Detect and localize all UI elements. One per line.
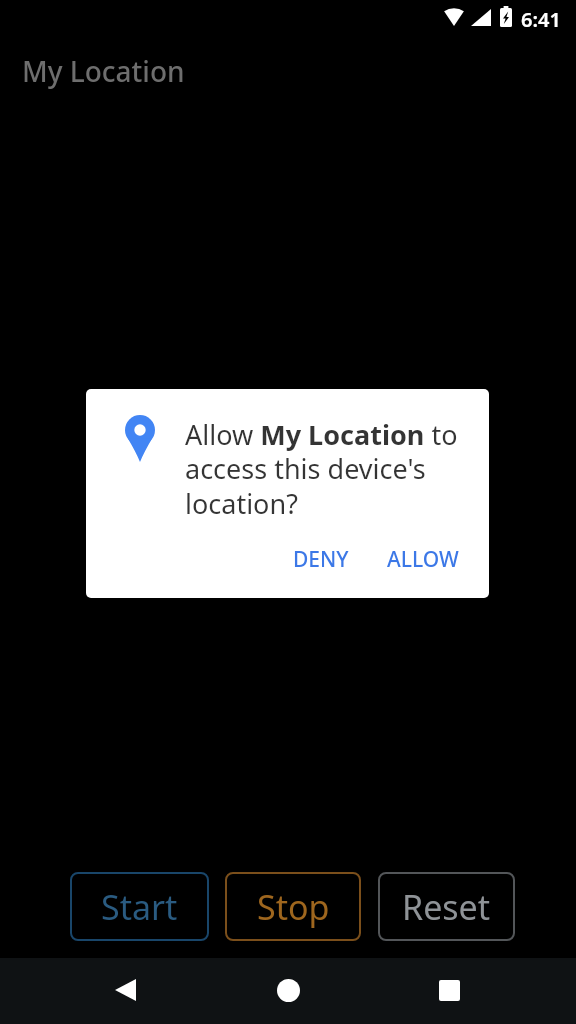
button[interactable]: DENY bbox=[293, 545, 349, 574]
staticText: My Location bbox=[22, 52, 185, 90]
staticText: Start bbox=[101, 884, 178, 930]
button[interactable]: ALLOW bbox=[387, 545, 459, 574]
staticText: Reset bbox=[402, 884, 491, 930]
button[interactable] bbox=[266, 968, 310, 1012]
button[interactable]: Reset bbox=[378, 872, 515, 941]
button[interactable]: Stop bbox=[225, 872, 361, 941]
staticText: 6:41 bbox=[521, 6, 561, 33]
button[interactable] bbox=[103, 968, 147, 1012]
staticText: Allow My Location to access this device'… bbox=[185, 416, 458, 522]
button[interactable]: Start bbox=[70, 872, 209, 941]
button[interactable] bbox=[427, 968, 471, 1012]
staticText: Stop bbox=[257, 884, 330, 930]
